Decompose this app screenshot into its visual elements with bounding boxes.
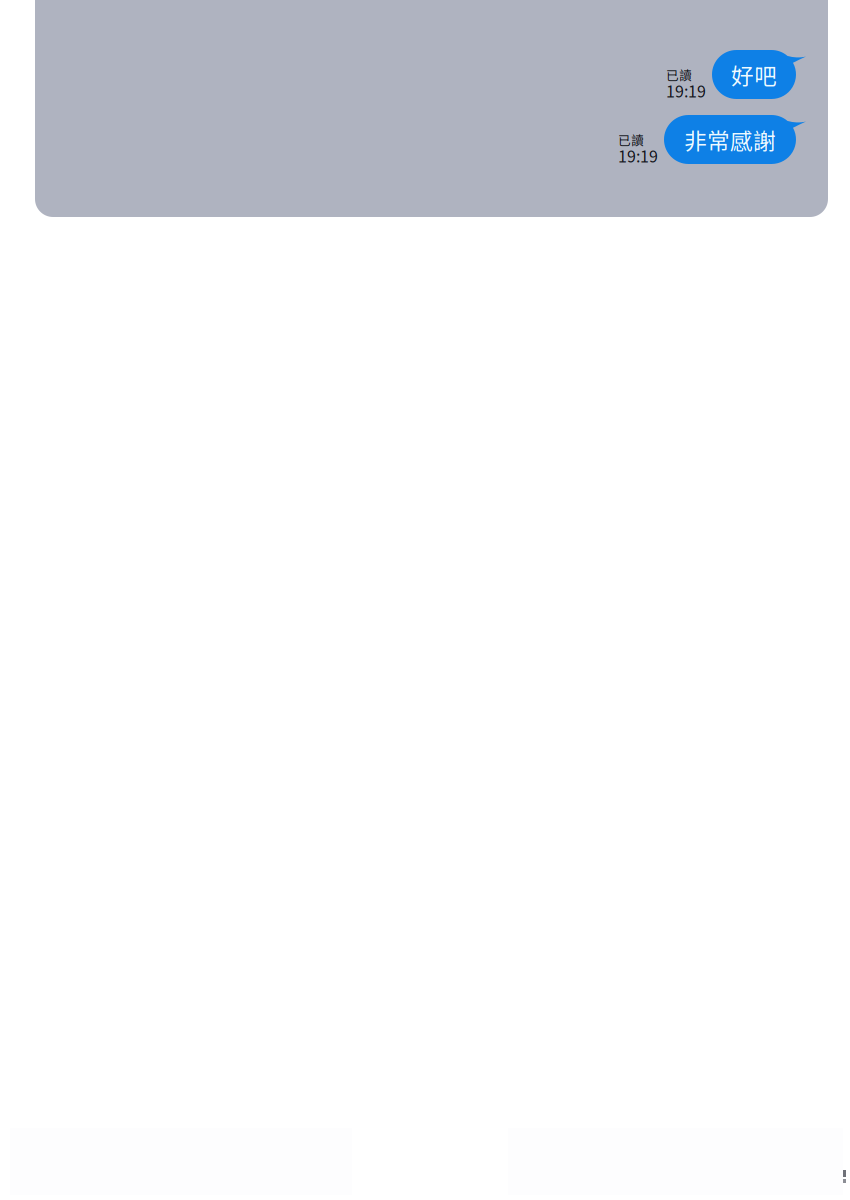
staticText: 非常感謝 [684,123,776,156]
staticText: 已讀 [666,66,692,84]
staticText: 已讀 [618,131,644,149]
button[interactable]: 已讀 [618,115,806,164]
button[interactable]: 已讀 [666,50,806,99]
staticText: 19:19 [618,144,658,167]
staticText: 好吧 [731,58,777,91]
staticText: 19:19 [666,79,706,102]
